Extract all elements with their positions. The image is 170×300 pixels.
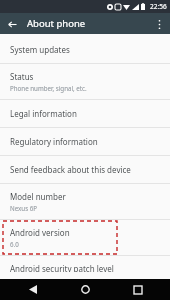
button[interactable]: Back: [4, 16, 20, 32]
button[interactable]: Status: [0, 64, 170, 99]
staticText: Model number: [10, 191, 66, 202]
staticText: Send feedback about this device: [10, 164, 131, 175]
button[interactable]: Android version: [0, 220, 170, 255]
button[interactable]: Regulatory information: [0, 128, 170, 155]
button[interactable]: Home: [65, 279, 105, 300]
staticText: Regulatory information: [10, 136, 98, 147]
staticText: Legal information: [10, 108, 77, 119]
staticText: Status: [10, 71, 34, 82]
staticText: 6.0: [10, 240, 19, 248]
button[interactable]: More options: [151, 16, 167, 32]
staticText: 22:56: [150, 2, 167, 11]
staticText: Phone number, signal, etc.: [10, 84, 87, 92]
button[interactable]: Legal information: [0, 100, 170, 127]
button[interactable]: Send feedback about this device: [0, 156, 170, 183]
button[interactable]: Recent apps: [118, 279, 158, 300]
staticText: About phone: [27, 17, 86, 30]
staticText: System updates: [10, 44, 70, 55]
button[interactable]: Back: [13, 279, 53, 300]
button[interactable]: Android security patch level: [0, 256, 170, 279]
button[interactable]: System updates: [0, 36, 170, 63]
button[interactable]: Model number: [0, 184, 170, 219]
staticText: Nexus 6P: [10, 204, 38, 212]
staticText: Android version: [10, 227, 70, 238]
staticText: Android security patch level: [10, 263, 114, 272]
